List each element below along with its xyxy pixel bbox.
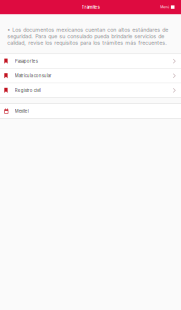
staticText: Menú xyxy=(160,5,169,9)
staticText: • Los documentos mexicanos cuentan con a… xyxy=(7,27,168,46)
staticText: Matrícula consular xyxy=(15,73,52,78)
staticText: Trámites xyxy=(81,4,99,10)
button[interactable]: Pasaportes xyxy=(0,54,181,68)
staticText: Pasaportes xyxy=(15,58,38,64)
button[interactable]: Menú xyxy=(160,0,181,14)
button[interactable]: Mexitel xyxy=(0,104,181,118)
staticText: Registro civil xyxy=(15,88,41,93)
button[interactable]: Registro civil xyxy=(0,83,181,97)
staticText: Mexitel xyxy=(15,108,29,114)
button[interactable]: Matrícula consular xyxy=(0,69,181,83)
